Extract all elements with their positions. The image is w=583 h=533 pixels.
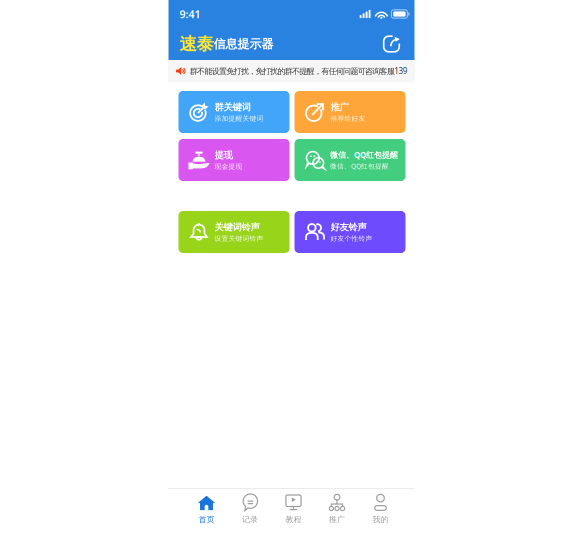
button[interactable]: 微信、QQ红包提醒: [294, 139, 405, 181]
button[interactable]: 提现: [178, 139, 289, 181]
staticText: 9:41: [179, 7, 200, 21]
button[interactable]: 推广: [315, 489, 359, 533]
staticText: 教程: [285, 515, 301, 524]
staticText: 速泰: [179, 33, 213, 55]
staticText: 群关键词: [214, 101, 250, 113]
staticText: 设置关键词铃声: [214, 234, 263, 243]
button[interactable]: 好友铃声: [294, 211, 405, 253]
button[interactable]: 推广: [294, 91, 405, 133]
button[interactable]: 教程: [272, 489, 315, 533]
staticText: 现金提现: [214, 162, 242, 171]
staticText: 推荐给好友: [330, 114, 365, 123]
button[interactable]: 我的: [359, 489, 402, 533]
staticText: 微信、QQ红包提醒: [330, 149, 398, 160]
staticText: 添加提醒关键词: [214, 114, 263, 123]
staticText: 信息提示器: [213, 37, 273, 51]
staticText: 首页: [198, 515, 214, 524]
staticText: 好友铃声: [330, 221, 366, 233]
button[interactable]: 分享: [378, 31, 404, 57]
staticText: 记录: [242, 515, 258, 524]
staticText: 好友个性铃声: [330, 234, 372, 243]
staticText: 推广: [330, 101, 348, 113]
staticText: 我的: [372, 515, 388, 524]
staticText: 推广: [329, 515, 345, 524]
button[interactable]: 首页: [185, 489, 228, 533]
staticText: 微信、QQ红包提醒: [330, 162, 389, 170]
button[interactable]: 记录: [228, 489, 272, 533]
staticText: 关键词铃声: [214, 221, 259, 233]
button[interactable]: 关键词铃声: [178, 211, 289, 253]
button[interactable]: 群关键词: [178, 91, 289, 133]
staticText: 群不能设置免打扰，免打扰的群不提醒，有任何问题可咨询客服139: [190, 66, 407, 76]
staticText: 提现: [214, 149, 232, 161]
